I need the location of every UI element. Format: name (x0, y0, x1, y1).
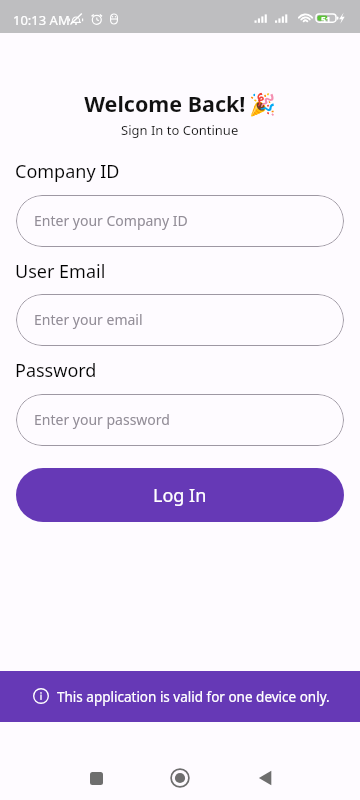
staticText: Enter your email (34, 310, 143, 329)
staticText: Password (15, 358, 97, 383)
button[interactable]: Recent apps (68, 722, 124, 800)
staticText: Log In (153, 483, 207, 508)
button[interactable]: Enter your Company ID (16, 195, 344, 247)
staticText: 51 (321, 14, 331, 26)
staticText: 10:13 AM (13, 11, 70, 29)
staticText: Enter your Company ID (34, 211, 188, 230)
button[interactable]: Back (237, 722, 293, 800)
staticText: Enter your password (34, 410, 170, 429)
button[interactable]: Log In (16, 468, 344, 522)
staticText: User Email (15, 259, 106, 284)
staticText: Welcome Back! 🎉 (84, 89, 276, 118)
staticText: Company ID (15, 159, 120, 184)
staticText: This application is valid for one device… (57, 688, 330, 706)
button[interactable]: Home (152, 722, 208, 800)
staticText: Sign In to Continue (121, 121, 239, 139)
button[interactable]: Enter your password (16, 394, 344, 446)
button[interactable]: Enter your email (16, 294, 344, 346)
